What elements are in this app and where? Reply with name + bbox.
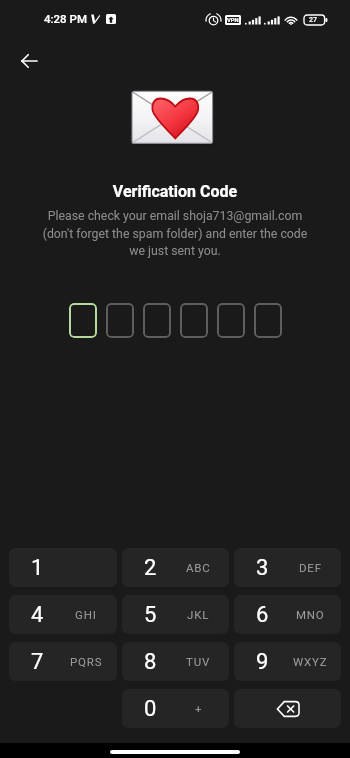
staticText: WXYZ [293,655,328,668]
staticText: Verification Code [0,182,350,201]
button[interactable]: Back [13,45,45,77]
staticText: DEF [299,561,322,574]
button[interactable]: 8 [122,642,229,681]
button[interactable] [217,303,245,338]
button[interactable]: 1 [9,548,117,587]
button[interactable] [69,303,97,338]
staticText: ABC [186,561,211,574]
staticText: 8 [144,649,157,675]
staticText: 7 [31,649,44,675]
staticText: 6 [256,602,269,628]
staticText: 27 [309,16,317,24]
staticText: 3 [256,555,269,581]
staticText: MNO [296,608,325,621]
staticText: 1 [31,555,44,581]
button[interactable]: 2 [122,548,229,587]
staticText: PQRS [70,655,103,668]
button[interactable] [180,303,208,338]
button[interactable]: 9 [234,642,341,681]
staticText: 9 [256,649,269,675]
button[interactable] [143,303,171,338]
staticText: TUV [186,655,211,668]
staticText: 5 [144,602,157,628]
button[interactable] [106,303,134,338]
staticText: 0 [144,696,157,722]
staticText: 2 [144,555,157,581]
button[interactable] [254,303,282,338]
staticText: Please check your email shoja713@gmail.c… [0,209,350,258]
button[interactable]: 3 [234,548,341,587]
button[interactable]: 5 [122,595,229,634]
button[interactable]: 4 [9,595,117,634]
staticText: JKL [187,608,210,621]
staticText: GHI [75,608,97,621]
button[interactable]: Backspace [234,689,341,728]
button[interactable]: 7 [9,642,117,681]
staticText: 4 [31,602,44,628]
staticText: 4:28 PM [44,12,87,25]
button[interactable]: 6 [234,595,341,634]
button[interactable]: 0 [122,689,229,728]
staticText: VPN [227,17,239,24]
staticText: + [195,702,203,715]
